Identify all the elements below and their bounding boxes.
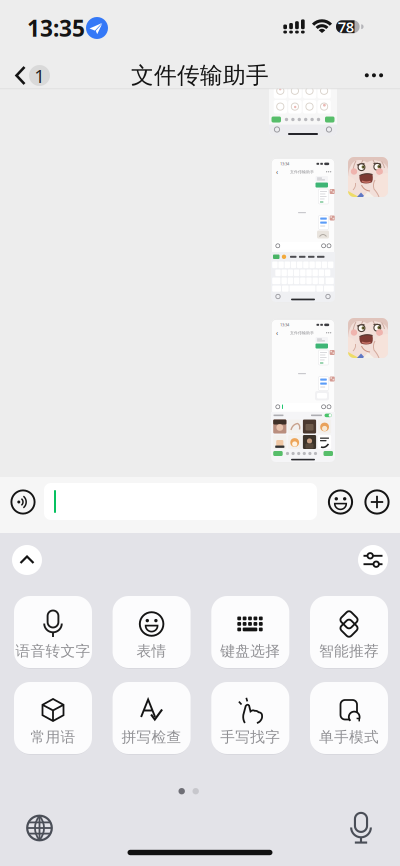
button[interactable]: 手写找字 xyxy=(211,682,289,754)
button[interactable]: Keyboard settings xyxy=(358,545,388,575)
button[interactable]: Stickers xyxy=(327,489,353,515)
button[interactable]: 单手模式 xyxy=(310,682,388,754)
staticText: 语音转文字 xyxy=(15,642,90,660)
button[interactable]: 键盘选择 xyxy=(211,596,289,668)
staticText: 单手模式 xyxy=(319,728,379,746)
staticText: 拼写检查 xyxy=(122,728,182,746)
button[interactable]: My profile photo xyxy=(348,318,388,358)
button[interactable]: Collapse panel xyxy=(12,545,42,575)
button[interactable]: Switch keyboard xyxy=(25,814,53,842)
button[interactable]: More xyxy=(359,61,388,89)
button[interactable]: More functions xyxy=(364,489,390,515)
staticText: 手写找字 xyxy=(220,728,280,746)
staticText: 常用语 xyxy=(30,728,75,746)
button[interactable]: 语音转文字 xyxy=(14,596,92,668)
button[interactable]: 拼写检查 xyxy=(113,682,191,754)
staticText: ‹ xyxy=(276,167,278,176)
staticText: 智能推荐 xyxy=(319,642,379,660)
staticText: 13:34 xyxy=(280,161,289,166)
button[interactable]: Dictation xyxy=(346,813,376,843)
staticText: 78 xyxy=(338,17,354,36)
staticText: ‹ xyxy=(276,328,278,337)
button[interactable]: My profile photo xyxy=(348,157,388,197)
button[interactable]: 常用语 xyxy=(14,682,92,754)
staticText: 文件传输助手 xyxy=(290,169,314,174)
staticText: 键盘选择 xyxy=(220,642,280,660)
button[interactable]: 表情 xyxy=(113,596,191,668)
staticText: 文件传输助手 xyxy=(131,62,269,89)
staticText: 13:35 xyxy=(27,13,85,43)
button[interactable]: Photo message xyxy=(271,158,335,302)
button[interactable]: Back xyxy=(4,59,60,92)
staticText: 文件传输助手 xyxy=(290,330,314,335)
staticText: 表情 xyxy=(137,642,167,660)
staticText: 13:34 xyxy=(280,322,289,327)
button[interactable]: Hold to talk xyxy=(10,489,36,515)
button[interactable]: Message field xyxy=(44,483,317,520)
button[interactable]: 智能推荐 xyxy=(310,596,388,668)
button[interactable]: Photo message xyxy=(271,319,335,462)
button[interactable]: Photo message xyxy=(269,84,337,136)
staticText: 1 xyxy=(34,63,45,88)
